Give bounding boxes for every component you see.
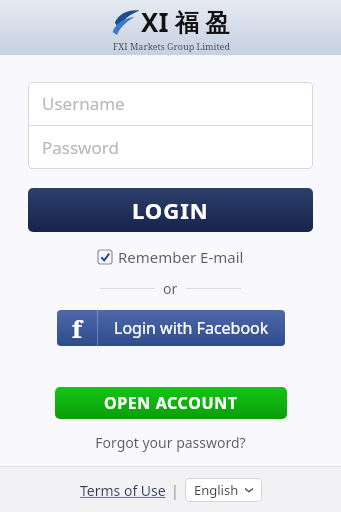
staticText: LOGIN xyxy=(132,195,209,225)
staticText: or xyxy=(163,279,178,298)
staticText: Terms of Use xyxy=(80,481,166,500)
button[interactable]: English xyxy=(185,478,262,502)
button[interactable]: Remember E-mail xyxy=(98,247,244,267)
staticText: Login with Facebook xyxy=(114,317,269,339)
staticText: Username xyxy=(42,92,125,115)
staticText: f xyxy=(72,312,82,345)
staticText: 福 盈 xyxy=(175,5,230,38)
staticText: FXI Markets Group Limited xyxy=(113,40,230,52)
staticText: Password xyxy=(42,136,119,159)
staticText: English xyxy=(194,481,239,499)
button[interactable]: Forgot your password? xyxy=(0,433,341,452)
button[interactable]: Terms of Use xyxy=(80,481,166,500)
button[interactable]: OPEN ACCOUNT xyxy=(55,387,287,419)
staticText: OPEN ACCOUNT xyxy=(104,392,238,414)
button[interactable]: Password xyxy=(28,126,313,169)
button[interactable]: LOGIN xyxy=(28,188,313,232)
other: Select language xyxy=(245,486,253,494)
staticText: | xyxy=(171,481,179,500)
button[interactable]: Username xyxy=(28,82,313,125)
staticText: XI xyxy=(141,4,169,39)
button[interactable]: f xyxy=(57,310,285,346)
staticText: Remember E-mail xyxy=(118,247,244,267)
